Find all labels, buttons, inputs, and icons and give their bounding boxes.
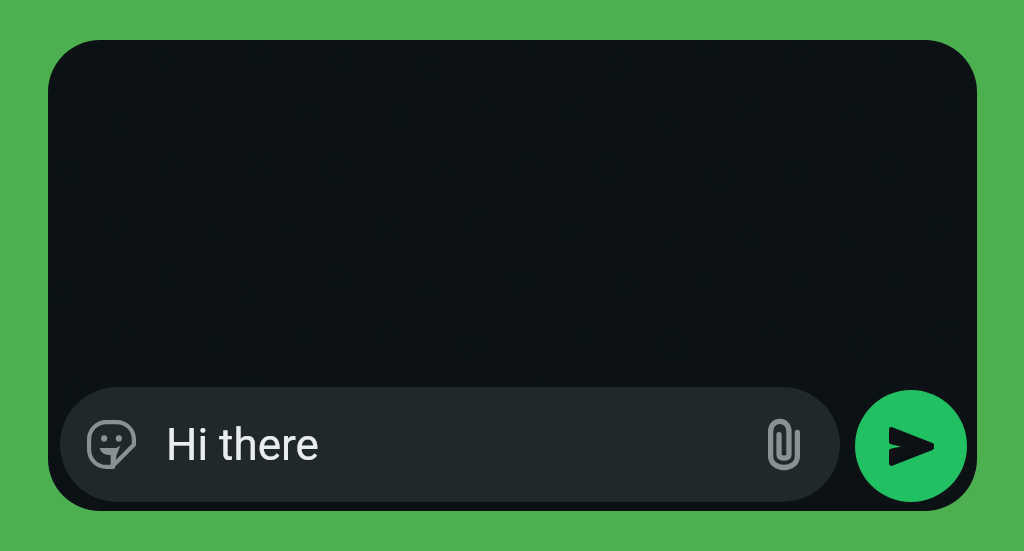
button[interactable]: Send [855,390,967,502]
button[interactable]: Emoji [60,387,840,502]
button[interactable]: Attach [768,420,800,469]
button[interactable]: Emoji [87,420,136,469]
staticText: Hi there [166,419,319,471]
